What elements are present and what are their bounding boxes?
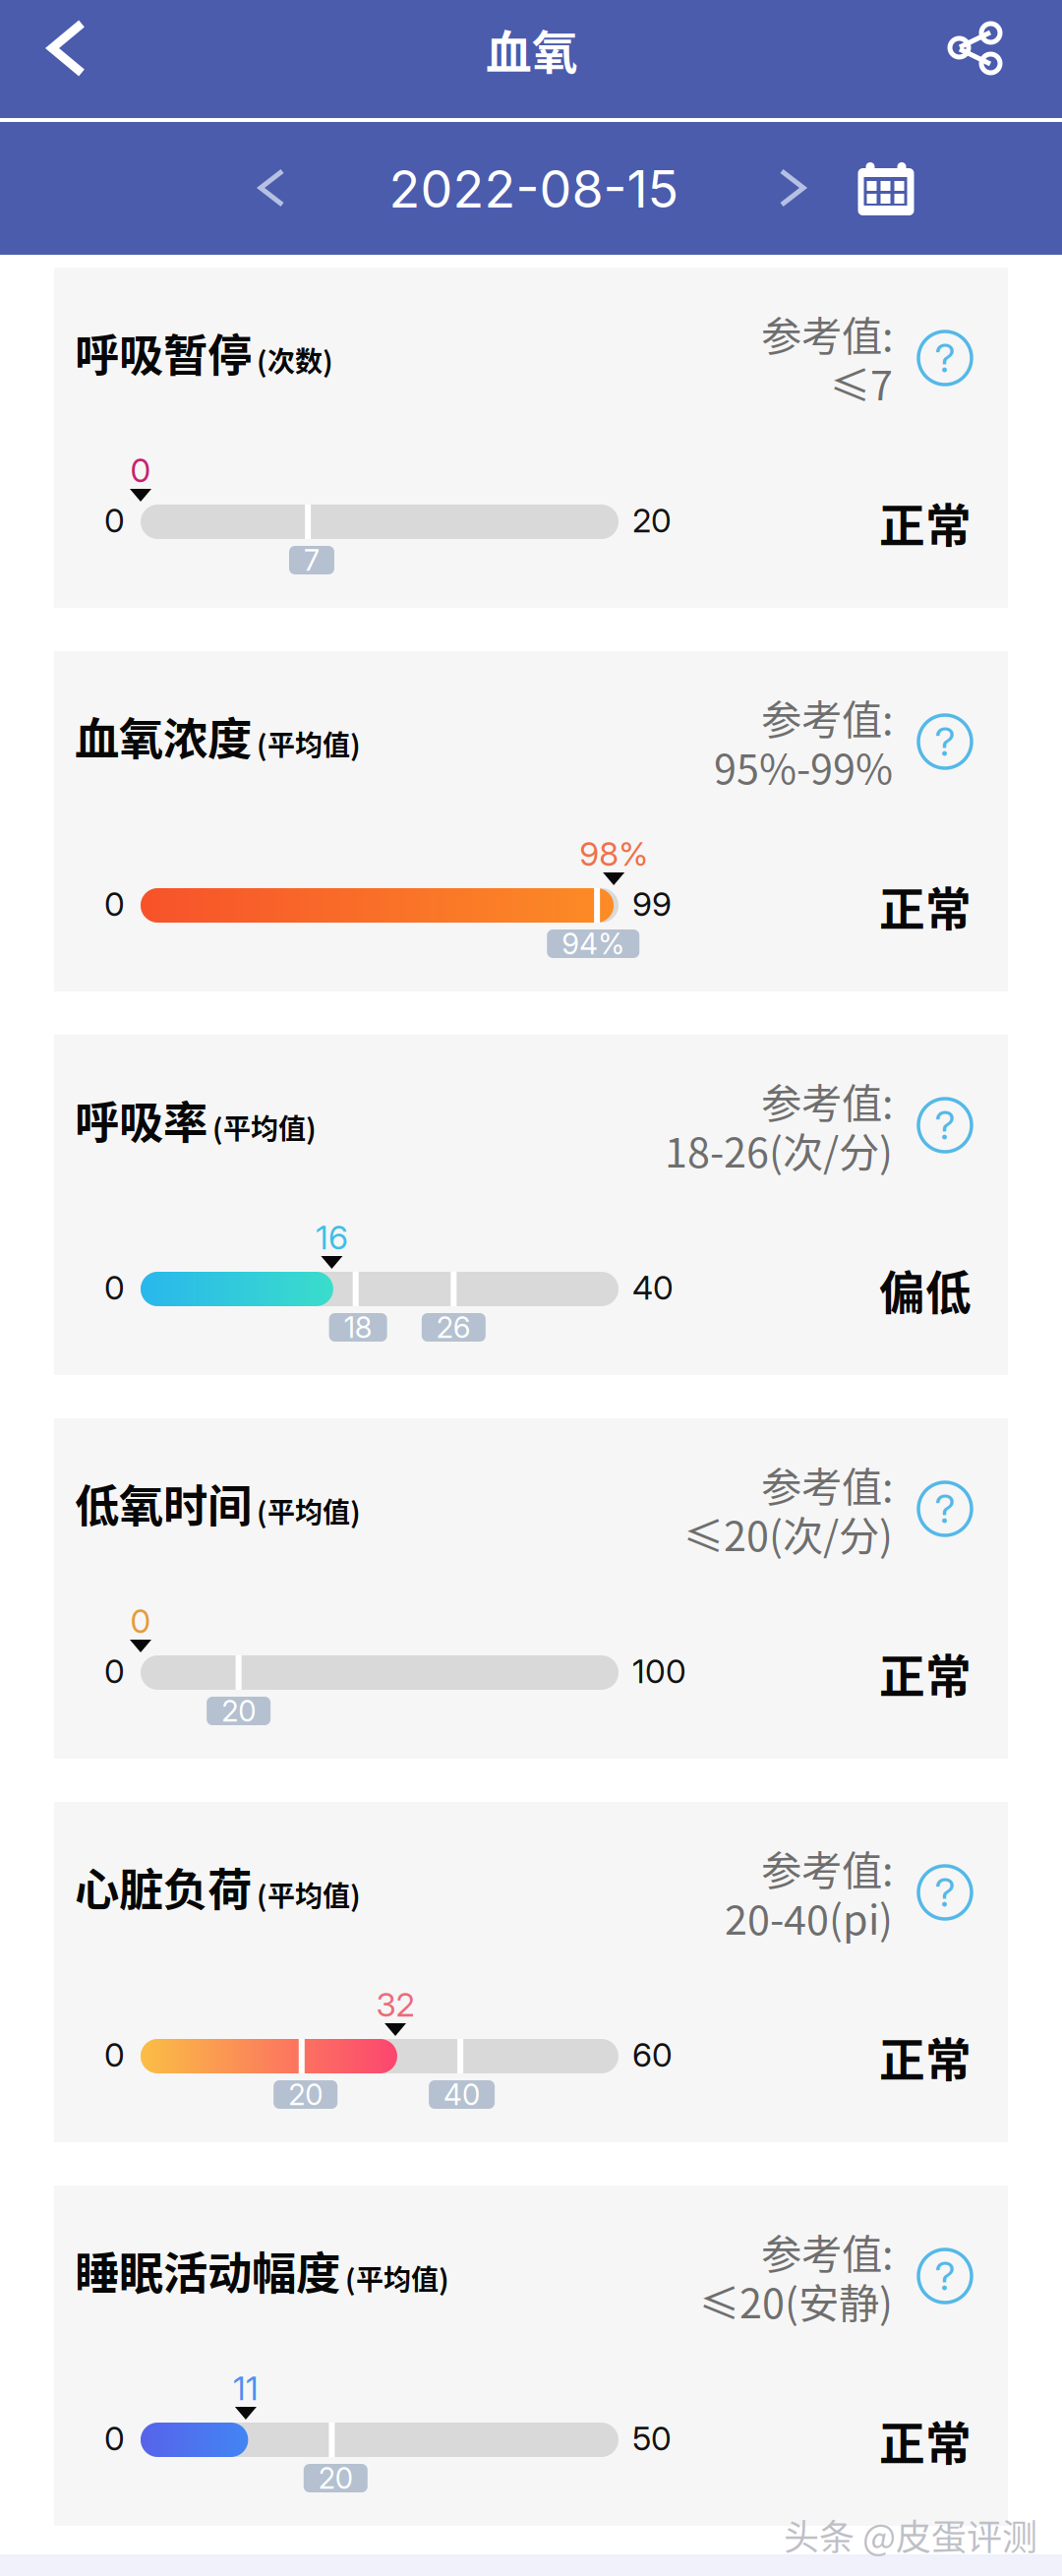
staticText: (平均值) [257, 723, 361, 763]
staticText: 0 [104, 500, 125, 540]
button[interactable]: 选择日期 [842, 142, 930, 236]
button[interactable]: 返回 [20, 0, 114, 97]
staticText: 40 [632, 1268, 674, 1307]
staticText: 0 [130, 1601, 151, 1641]
staticText: ≤20(次/分) [683, 1504, 893, 1563]
button[interactable]: 参考值说明 [918, 1099, 972, 1152]
staticText: 20 [288, 2077, 323, 2112]
staticText: 血氧浓度 [75, 704, 252, 768]
staticText: 心脏负荷 [75, 1854, 252, 1919]
staticText: 50 [632, 2418, 672, 2458]
staticText: 参考值: [761, 304, 893, 363]
staticText: 正常 [879, 2407, 972, 2474]
staticText: 100 [632, 1651, 686, 1691]
staticText: ? [935, 334, 955, 382]
button[interactable]: 参考值说明 [918, 715, 972, 768]
staticText: ≤20(安静) [699, 2271, 893, 2330]
button[interactable]: 参考值说明 [918, 1866, 972, 1919]
staticText: (平均值) [257, 1874, 361, 1914]
staticText: 20 [318, 2461, 353, 2496]
staticText: 低氧时间 [75, 1471, 252, 1535]
button[interactable]: 参考值说明 [918, 1482, 972, 1535]
button[interactable]: 参考值说明 [918, 331, 972, 385]
staticText: 参考值: [761, 688, 893, 747]
staticText: 11 [233, 2368, 259, 2408]
staticText: 血氧 [486, 16, 578, 82]
staticText: 2022-08-15 [389, 158, 679, 220]
staticText: 18-26(次/分) [665, 1120, 893, 1179]
staticText: ? [935, 1869, 955, 1916]
staticText: 正常 [879, 1640, 972, 1706]
staticText: 正常 [879, 489, 972, 556]
staticText: 参考值: [761, 1838, 893, 1897]
staticText: ? [935, 718, 955, 765]
staticText: 睡眠活动幅度 [75, 2238, 340, 2303]
staticText: ≤7 [830, 353, 893, 412]
staticText: 32 [376, 1985, 414, 2024]
staticText: 20 [221, 1694, 256, 1728]
staticText: 98% [579, 834, 648, 874]
staticText: 头条 @皮蛋评测 [784, 2509, 1037, 2560]
staticText: 16 [316, 1217, 348, 1257]
staticText: (平均值) [257, 1491, 361, 1530]
staticText: 正常 [879, 873, 972, 939]
staticText: ? [935, 1485, 955, 1533]
staticText: 99 [632, 884, 672, 924]
staticText: 0 [104, 1268, 125, 1307]
staticText: 呼吸率 [75, 1087, 207, 1152]
staticText: 7 [304, 543, 320, 578]
staticText: 参考值: [761, 1455, 893, 1514]
button[interactable]: 前一天 [232, 141, 311, 235]
staticText: 正常 [879, 2023, 972, 2090]
staticText: 偏低 [879, 1256, 972, 1323]
staticText: ? [935, 1101, 955, 1149]
staticText: (平均值) [345, 2258, 449, 2298]
staticText: 呼吸暂停 [75, 320, 252, 385]
staticText: 60 [632, 2035, 673, 2074]
staticText: ? [935, 2252, 955, 2300]
staticText: 0 [130, 450, 151, 490]
staticText: 0 [104, 2418, 125, 2458]
button[interactable]: 后一天 [753, 141, 832, 235]
button[interactable]: 分享 [928, 0, 1023, 97]
staticText: 参考值: [761, 1071, 893, 1130]
staticText: 40 [444, 2077, 480, 2112]
staticText: 0 [104, 884, 125, 924]
button[interactable]: 参考值说明 [918, 2249, 972, 2303]
staticText: 26 [436, 1310, 471, 1345]
staticText: 20 [632, 500, 672, 540]
staticText: 18 [344, 1310, 372, 1345]
staticText: (次数) [257, 340, 333, 380]
staticText: 95%-99% [714, 737, 893, 796]
staticText: (平均值) [212, 1107, 317, 1147]
staticText: 20-40(pi) [725, 1887, 893, 1946]
staticText: 参考值: [761, 2222, 893, 2281]
staticText: 94% [562, 926, 625, 961]
staticText: 0 [104, 2035, 125, 2074]
staticText: 0 [104, 1651, 125, 1691]
